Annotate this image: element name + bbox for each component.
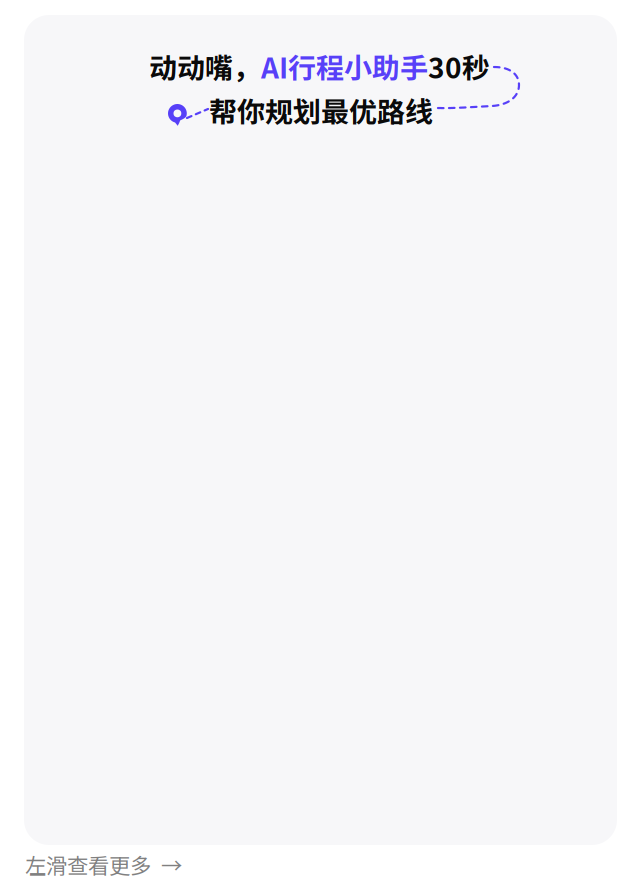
staticText: 动动嘴，	[149, 46, 261, 86]
staticText: AI行程小助手	[261, 46, 428, 86]
button[interactable]: 动动嘴，AI行程小助手30秒帮你规划最优路线	[24, 15, 617, 845]
staticText: 帮你规划最优路线	[209, 90, 433, 130]
button[interactable]: 左滑查看更多 →	[25, 849, 182, 880]
staticText: 左滑查看更多 →	[25, 849, 182, 880]
staticText: 30秒	[428, 46, 490, 86]
